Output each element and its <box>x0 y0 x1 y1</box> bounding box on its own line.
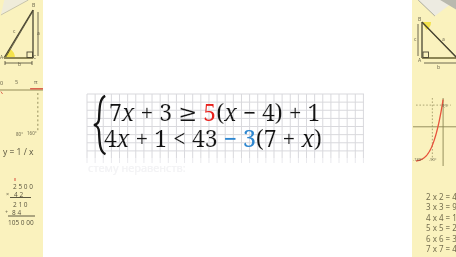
staticText: a <box>442 36 445 43</box>
staticText: B <box>418 16 422 23</box>
staticText: 160° <box>27 130 37 136</box>
staticText: 105 0 00 <box>8 218 34 227</box>
button[interactable]: Geometry reference notes, right <box>412 0 456 257</box>
staticText: 8 4 <box>12 208 22 217</box>
button[interactable]: 7x + 3 ≥ 5(x − 4) + 1 <box>109 96 321 127</box>
staticText: 2 x 2 = 4 <box>426 191 456 202</box>
staticText: × <box>6 190 10 197</box>
staticText: стему неравенств: <box>88 160 186 175</box>
staticText: π <box>34 78 38 85</box>
staticText: 6 x 6 = 36 <box>426 233 456 244</box>
staticText: c <box>414 36 417 43</box>
staticText: B <box>32 2 36 9</box>
staticText: 0,5 <box>442 103 448 108</box>
staticText: 2 1 0 <box>13 200 28 209</box>
button[interactable]: Geometry reference notes, left <box>0 0 43 257</box>
staticText: A <box>418 57 422 64</box>
staticText: 4 x 4 = 16 <box>426 212 456 223</box>
staticText: 3 x 3 = 9 <box>426 201 456 212</box>
staticText: 80° <box>16 131 24 137</box>
staticText: 4x + 1 < 43 − 3(7 + x) <box>104 122 322 153</box>
staticText: y = 1 / x <box>3 146 34 158</box>
staticText: 0 <box>0 79 4 86</box>
staticText: 7 x 7 = 49 <box>426 243 456 254</box>
staticText: a <box>37 30 40 37</box>
staticText: 4 2 <box>14 190 24 199</box>
staticText: b <box>18 61 22 68</box>
staticText: + <box>5 208 9 215</box>
staticText: 2 5 0 0 <box>13 182 33 191</box>
staticText: 5 <box>15 78 19 85</box>
button[interactable]: System of inequalities on graph paper <box>87 94 364 158</box>
staticText: b <box>437 64 441 71</box>
staticText: A <box>0 54 4 61</box>
staticText: -180° <box>413 157 423 162</box>
button[interactable]: 4x + 1 < 43 − 3(7 + x) <box>104 122 322 153</box>
staticText: C <box>33 54 37 61</box>
staticText: 7x + 3 ≥ 5(x − 4) + 1 <box>109 96 321 127</box>
staticText: 5 x 5 = 25 <box>426 222 456 233</box>
staticText: c <box>13 28 16 35</box>
staticText: -90° <box>429 157 437 162</box>
